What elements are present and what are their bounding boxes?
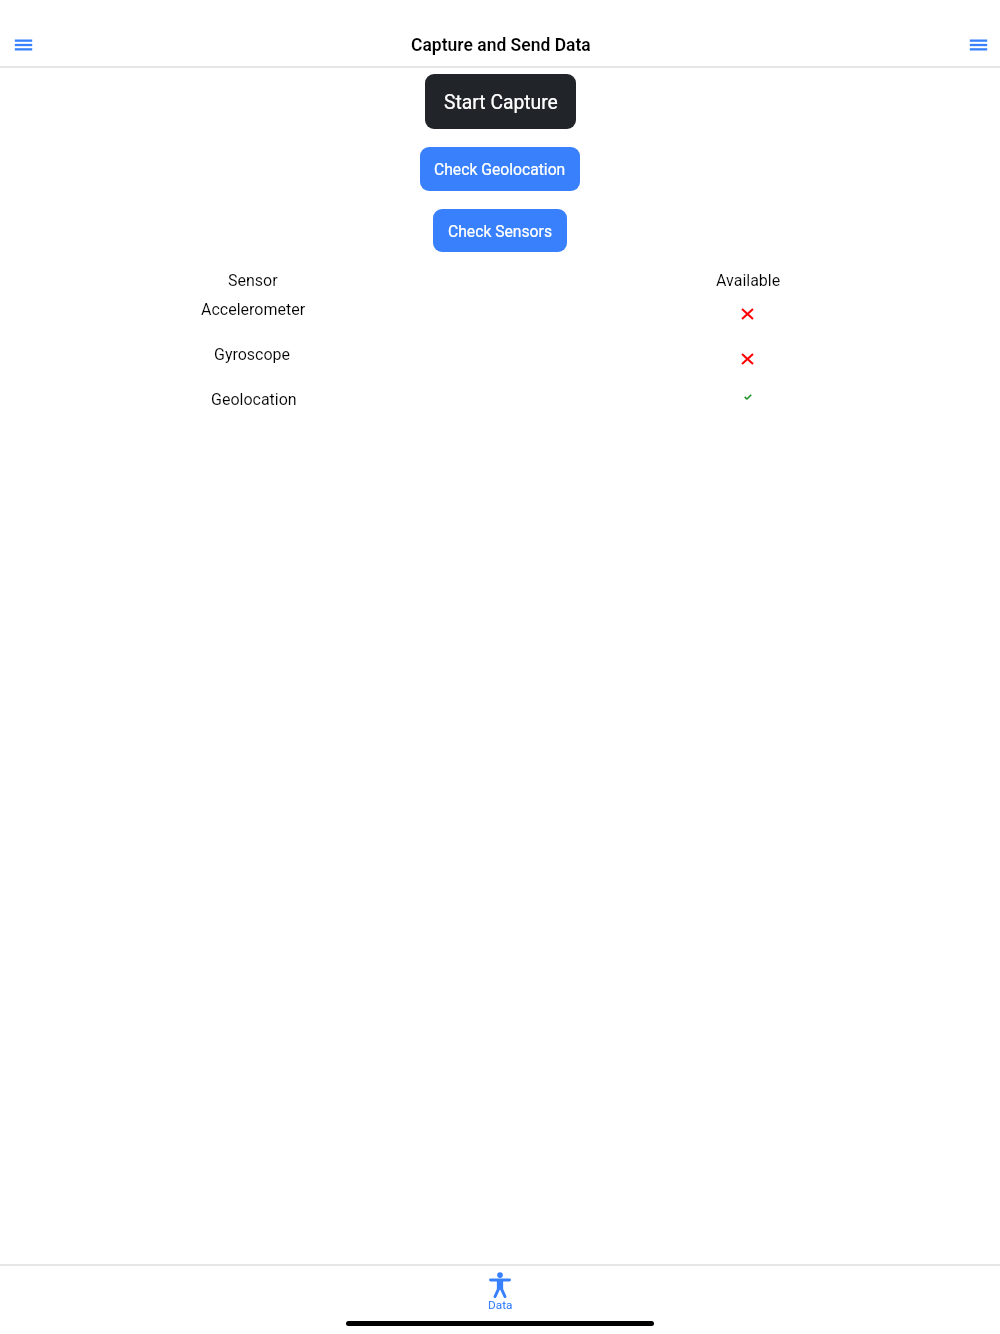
staticText: Capture and Send Data — [411, 35, 591, 56]
staticText: Available — [716, 271, 781, 290]
button[interactable]: Open navigation menu — [1, 23, 45, 67]
staticText: Start Capture — [444, 91, 558, 114]
staticText: Geolocation — [211, 390, 297, 409]
button[interactable]: More options — [956, 23, 1000, 67]
button[interactable]: Check Geolocation — [420, 147, 580, 191]
button[interactable]: Check Sensors — [433, 209, 567, 252]
button[interactable]: Start Capture — [425, 74, 576, 129]
staticText: Accelerometer — [201, 300, 306, 319]
button[interactable]: Data — [450, 1268, 550, 1318]
staticText: Sensor — [228, 271, 278, 290]
staticText: Gyroscope — [214, 345, 291, 364]
staticText: Check Geolocation — [434, 160, 566, 178]
staticText: Check Sensors — [448, 222, 552, 240]
staticText: Data — [488, 1298, 513, 1312]
